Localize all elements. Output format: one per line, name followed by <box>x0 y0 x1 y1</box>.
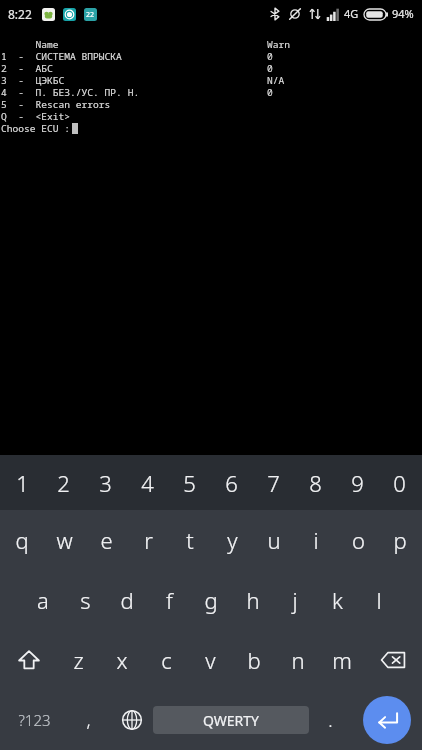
staticText: m <box>332 645 352 675</box>
staticText: , <box>86 708 91 733</box>
staticText: i <box>313 525 319 555</box>
staticText: c <box>161 645 172 675</box>
button[interactable]: 6 <box>210 455 252 510</box>
staticText: 0 <box>267 86 273 99</box>
button[interactable]: y <box>211 510 253 570</box>
staticText: 9 <box>351 468 364 498</box>
button[interactable]: Enter <box>363 696 411 744</box>
button[interactable]: t <box>169 510 211 570</box>
button[interactable]: d <box>106 570 148 630</box>
staticText: d <box>120 585 134 615</box>
button[interactable]: p <box>379 510 421 570</box>
staticText: Q - <Exit> <box>1 110 71 123</box>
staticText: z <box>73 645 84 675</box>
staticText: . <box>328 708 333 733</box>
button[interactable]: r <box>127 510 169 570</box>
staticText: k <box>332 585 343 615</box>
button[interactable]: e <box>85 510 127 570</box>
button[interactable]: 3 <box>84 455 126 510</box>
button[interactable]: b <box>232 630 276 690</box>
button[interactable]: u <box>253 510 295 570</box>
staticText: r <box>144 525 153 555</box>
staticText: a <box>37 585 49 615</box>
staticText: 0 <box>267 62 273 75</box>
staticText: Choose ECU : <box>1 122 71 135</box>
button[interactable]: ?123 <box>1 690 67 750</box>
button[interactable]: 1 <box>2 455 43 510</box>
staticText: 6 <box>225 468 238 498</box>
staticText: 8:22 <box>8 6 32 22</box>
button[interactable]: 2 <box>43 455 84 510</box>
staticText: 4 <box>141 468 154 498</box>
staticText: g <box>204 585 218 615</box>
button[interactable]: z <box>57 630 100 690</box>
staticText: u <box>267 525 281 555</box>
staticText: f <box>166 585 173 615</box>
staticText: j <box>292 585 298 615</box>
staticText: QWERTY <box>203 711 260 730</box>
staticText: 5 - Rescan errors <box>1 98 111 111</box>
staticText: 0 <box>267 50 273 63</box>
staticText: 0 <box>393 468 406 498</box>
button[interactable]: c <box>144 630 188 690</box>
staticText: t <box>186 525 194 555</box>
staticText: y <box>227 525 238 555</box>
button[interactable]: 7 <box>252 455 294 510</box>
button[interactable]: 4 <box>126 455 168 510</box>
button[interactable]: j <box>274 570 316 630</box>
staticText: v <box>205 645 216 675</box>
staticText: 5 <box>183 468 196 498</box>
button[interactable]: q <box>1 510 43 570</box>
staticText: q <box>15 525 29 555</box>
button[interactable]: x <box>100 630 144 690</box>
button[interactable]: h <box>232 570 274 630</box>
staticText: p <box>393 525 407 555</box>
button[interactable]: , <box>67 690 110 750</box>
staticText: b <box>247 645 261 675</box>
button[interactable]: o <box>337 510 379 570</box>
staticText: 1 - СИСТЕМА ВПРЫСКА <box>1 50 122 63</box>
staticText: o <box>352 525 365 555</box>
staticText: e <box>100 525 113 555</box>
staticText: 1 <box>16 468 29 498</box>
button[interactable]: 0 <box>378 455 420 510</box>
staticText: 94% <box>392 6 414 21</box>
button[interactable]: n <box>276 630 320 690</box>
button[interactable]: Change keyboard language <box>110 690 153 750</box>
staticText: ?123 <box>18 710 51 730</box>
staticText: x <box>116 645 128 675</box>
button[interactable]: l <box>358 570 400 630</box>
button[interactable]: 9 <box>336 455 378 510</box>
staticText: n <box>291 645 305 675</box>
staticText: 3 - ЦЭКБС <box>1 74 65 87</box>
button[interactable]: 5 <box>168 455 210 510</box>
staticText: s <box>80 585 91 615</box>
staticText: Name <box>1 38 59 51</box>
button[interactable]: i <box>295 510 337 570</box>
staticText: 7 <box>267 468 280 498</box>
staticText: w <box>56 525 73 555</box>
button[interactable]: k <box>316 570 358 630</box>
staticText: 4 - П. БЕЗ./УС. ПР. Н. <box>1 86 140 99</box>
button[interactable]: g <box>190 570 232 630</box>
button[interactable]: . <box>309 690 352 750</box>
staticText: 4G <box>344 6 359 21</box>
button[interactable]: s <box>64 570 106 630</box>
staticText: 2 <box>57 468 70 498</box>
staticText: 2 - АБС <box>1 62 53 75</box>
button[interactable]: Shift <box>1 630 57 690</box>
staticText: h <box>246 585 260 615</box>
button[interactable]: f <box>148 570 190 630</box>
button[interactable]: w <box>43 510 85 570</box>
staticText: Warn <box>267 38 291 51</box>
staticText: 3 <box>99 468 112 498</box>
button[interactable]: QWERTY <box>153 706 309 734</box>
staticText: 22 <box>86 10 95 20</box>
button[interactable]: Backspace <box>364 630 421 690</box>
button[interactable]: 8 <box>294 455 336 510</box>
staticText: l <box>376 585 382 615</box>
staticText: 8 <box>309 468 322 498</box>
button[interactable]: v <box>188 630 232 690</box>
button[interactable]: m <box>320 630 364 690</box>
button[interactable]: a <box>22 570 64 630</box>
